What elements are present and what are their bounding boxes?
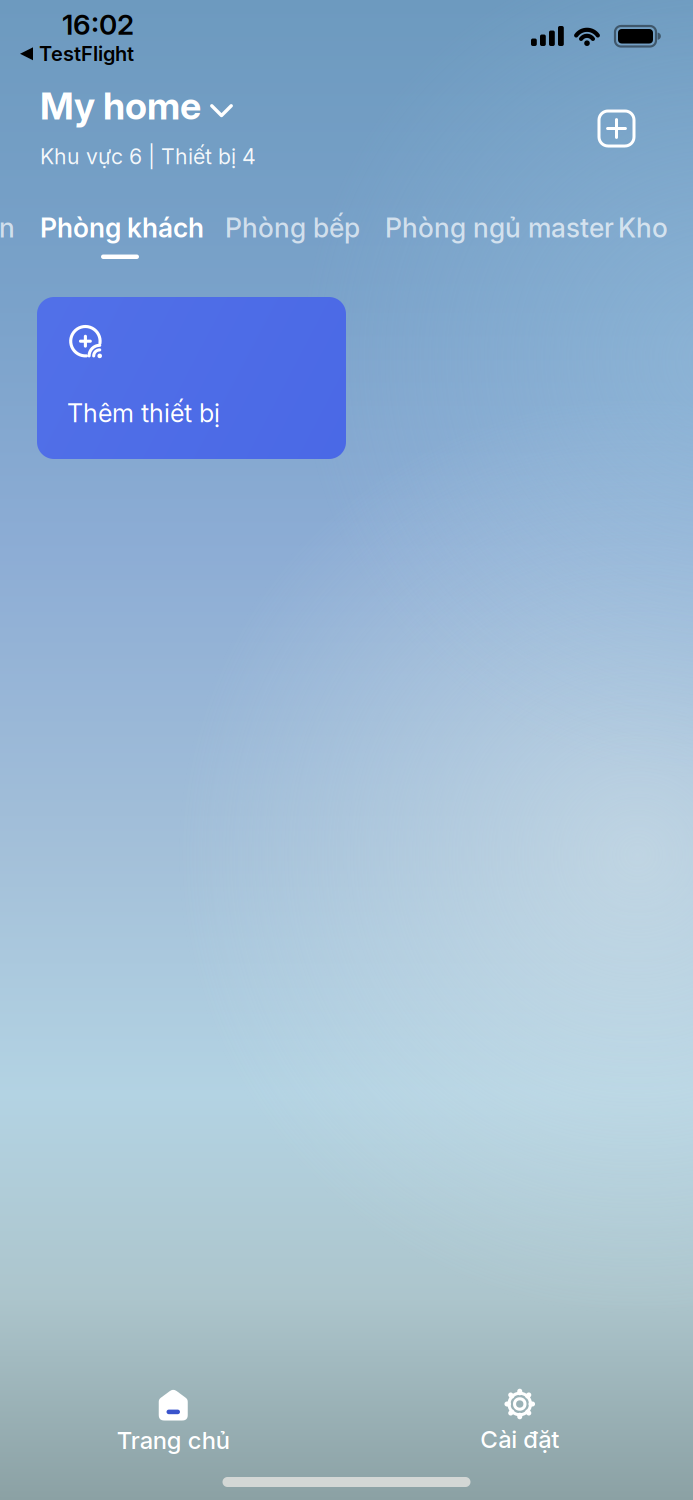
button[interactable]: Thêm thiết bị (37, 297, 346, 459)
button[interactable]: Thêm (599, 111, 634, 146)
button[interactable]: TestFlight (20, 42, 134, 66)
staticText: Phòng bếp (225, 212, 360, 243)
staticText: Phòng ngủ master (385, 212, 614, 243)
staticText: Kho (618, 212, 668, 243)
button[interactable]: Kho (618, 212, 668, 243)
staticText: Thêm thiết bị (67, 398, 220, 428)
button[interactable]: Phòng ngủ master (385, 212, 614, 243)
staticText: Trang chủ (117, 1426, 230, 1454)
staticText: TestFlight (39, 42, 134, 66)
button[interactable]: n (0, 212, 15, 243)
button[interactable]: Cài đặt (346, 1388, 693, 1453)
button[interactable]: My home (40, 84, 233, 128)
staticText: n (0, 212, 15, 243)
button[interactable]: Trang chủ (0, 1388, 346, 1454)
staticText: 16:02 (62, 8, 134, 41)
button[interactable]: Phòng bếp (225, 212, 360, 243)
staticText: Cài đặt (480, 1425, 559, 1453)
staticText: Phòng khách (40, 212, 204, 243)
staticText: My home (40, 84, 201, 128)
button[interactable]: Phòng khách (40, 212, 204, 243)
staticText: Khu vực 6 | Thiết bị 4 (40, 144, 256, 169)
